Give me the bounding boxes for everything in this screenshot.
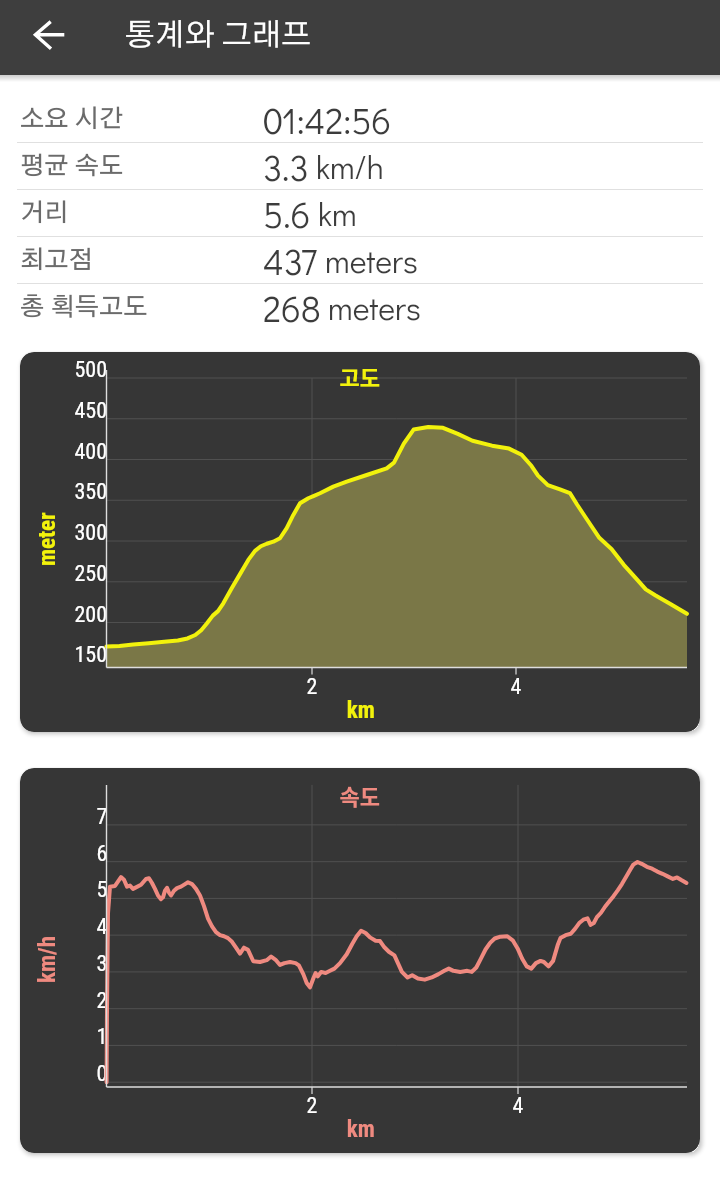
staticText: 소요 시간 xyxy=(20,107,124,132)
button[interactable] xyxy=(20,352,700,732)
staticText: 총 획득고도 xyxy=(20,295,148,320)
staticText: 5.6 xyxy=(263,190,311,236)
staticText: 통계와 그래프 xyxy=(125,20,312,51)
button[interactable]: 평균 속도 xyxy=(0,143,720,189)
staticText: 평균 속도 xyxy=(20,154,124,179)
button[interactable]: 거리 xyxy=(0,190,720,236)
button[interactable]: 총 획득고도 xyxy=(0,284,720,330)
staticText: 최고점 xyxy=(20,248,93,273)
staticText: km xyxy=(318,193,357,235)
staticText: meters xyxy=(328,287,421,329)
staticText: 거리 xyxy=(20,201,69,226)
staticText: 01:42:56 xyxy=(263,96,392,142)
button[interactable] xyxy=(20,768,700,1153)
button[interactable]: 소요 시간 xyxy=(0,96,720,142)
staticText: km/h xyxy=(316,146,384,188)
staticText: 268 xyxy=(263,284,321,330)
staticText: meters xyxy=(325,240,418,282)
button[interactable]: Back xyxy=(18,9,76,67)
staticText: 437 xyxy=(263,237,318,283)
button[interactable]: 최고점 xyxy=(0,237,720,283)
staticText: 3.3 xyxy=(263,143,309,189)
